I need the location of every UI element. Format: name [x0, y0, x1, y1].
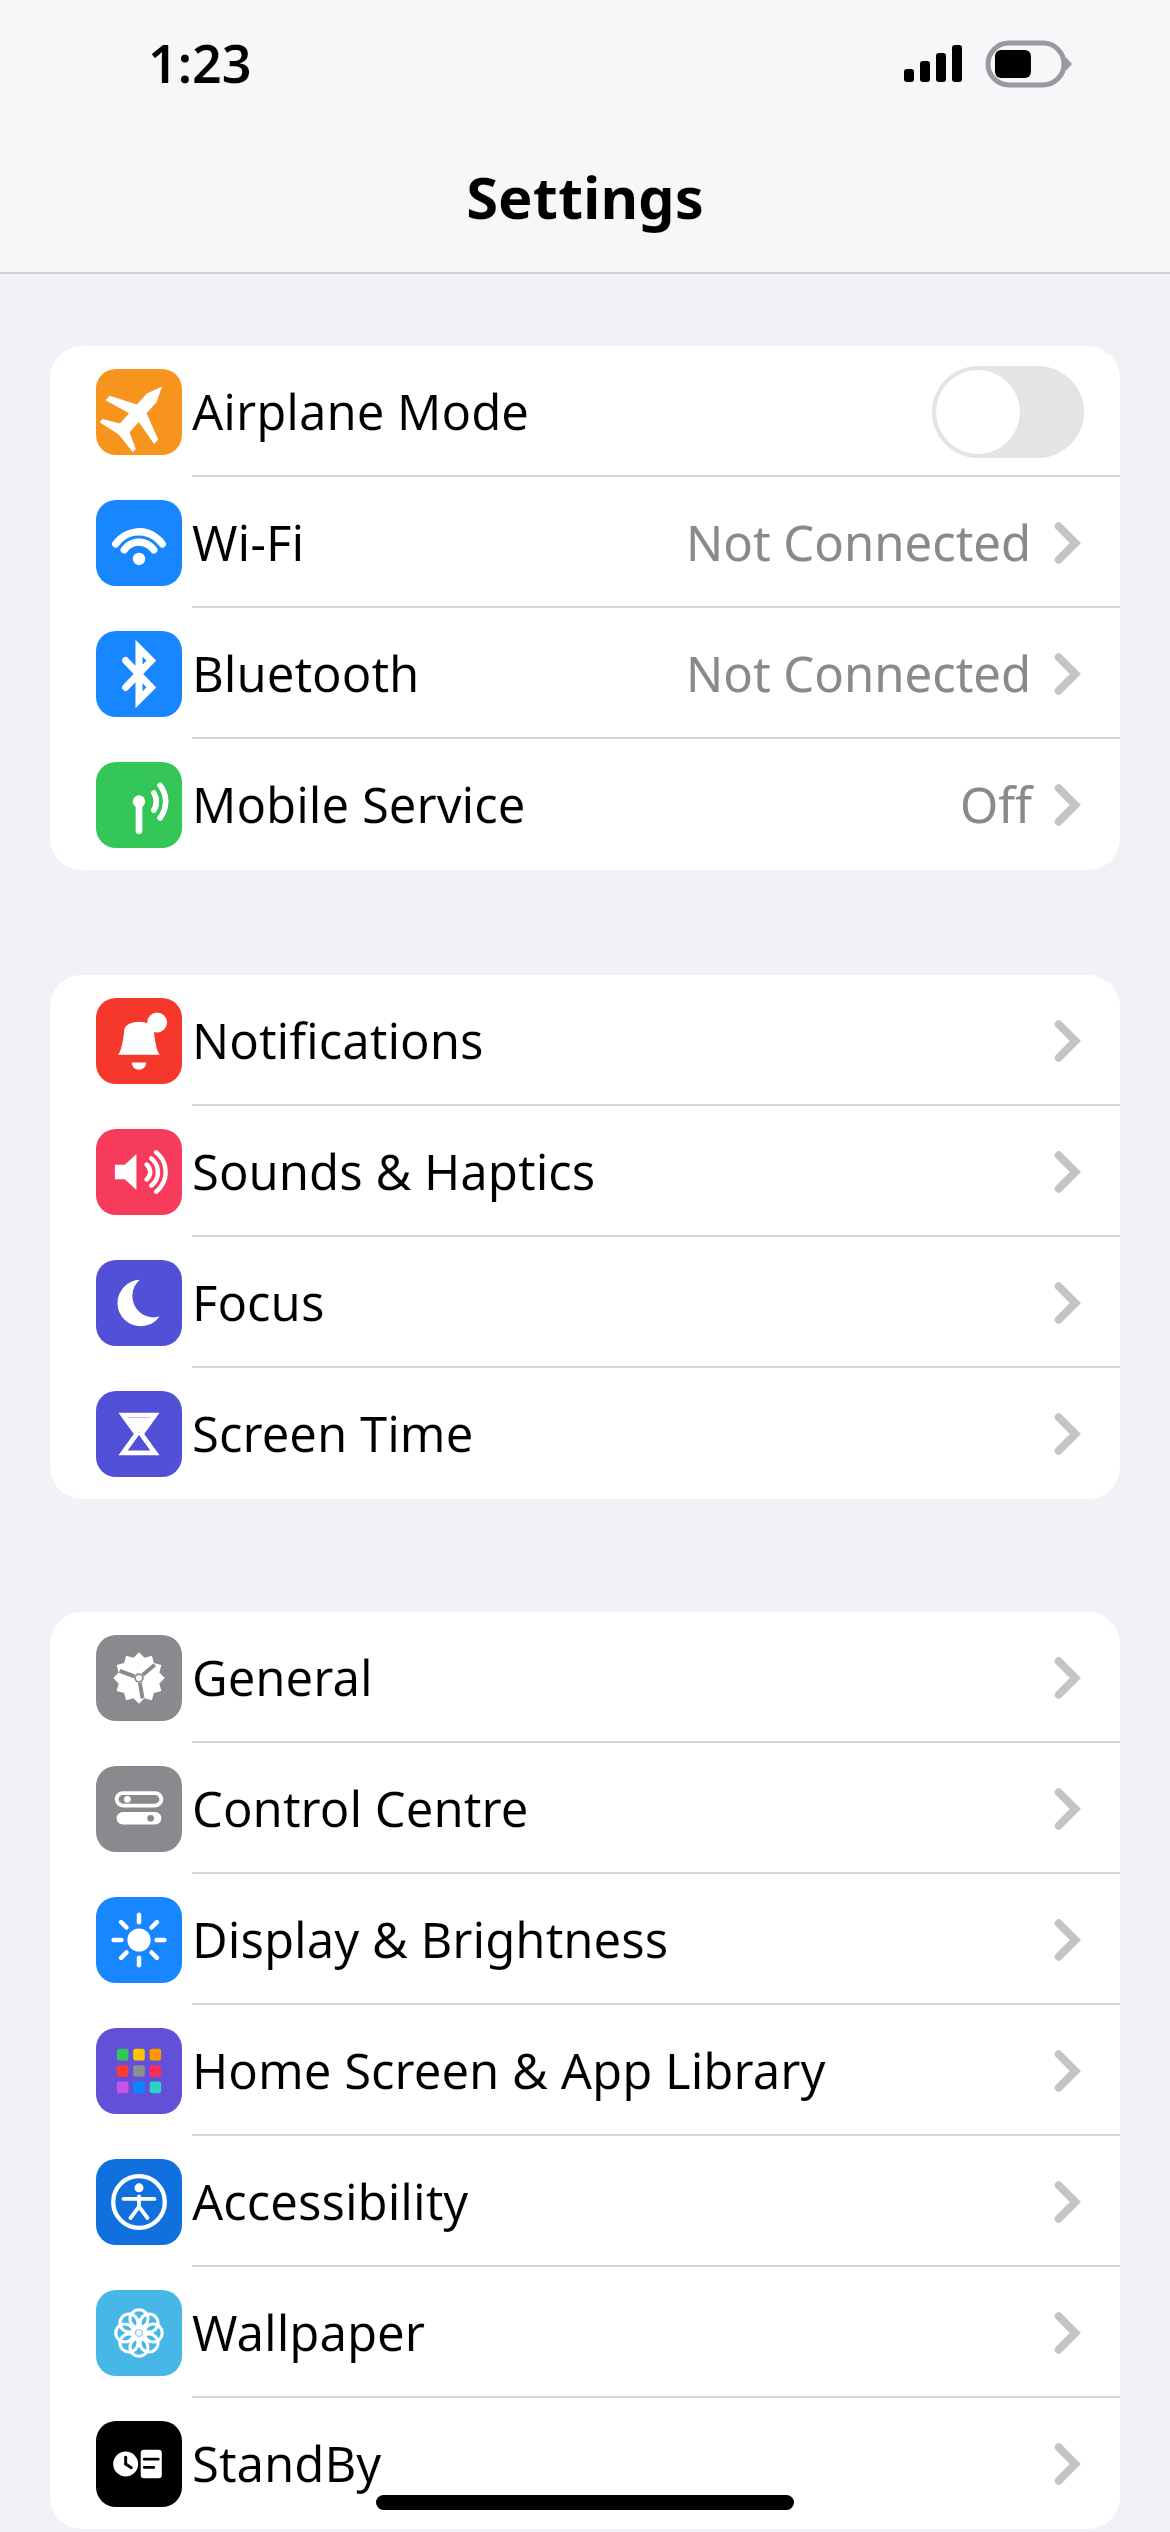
staticText: Focus — [192, 1269, 325, 1336]
button[interactable]: Bluetooth — [50, 608, 1120, 739]
staticText: Wallpaper — [192, 2299, 425, 2366]
button[interactable]: Airplane Mode — [50, 346, 1120, 477]
staticText: Wi-Fi — [192, 509, 305, 576]
button[interactable]: Mobile Service — [50, 739, 1120, 870]
button[interactable]: Display & Brightness — [50, 1874, 1120, 2005]
staticText: Not Connected — [686, 509, 1032, 576]
button[interactable]: Accessibility — [50, 2136, 1120, 2267]
staticText: Accessibility — [192, 2168, 469, 2235]
staticText: Not Connected — [686, 640, 1032, 707]
staticText: Bluetooth — [192, 640, 420, 707]
button[interactable]: Focus — [50, 1237, 1120, 1368]
button[interactable]: General — [50, 1612, 1120, 1743]
staticText: Control Centre — [192, 1775, 529, 1842]
button[interactable]: Wallpaper — [50, 2267, 1120, 2398]
staticText: Home Screen & App Library — [192, 2037, 826, 2104]
button[interactable]: Screen Time — [50, 1368, 1120, 1499]
staticText: Off — [960, 771, 1032, 838]
staticText: Airplane Mode — [192, 378, 529, 445]
button[interactable]: Home Screen & App Library — [50, 2005, 1120, 2136]
staticText: 1:23 — [148, 27, 252, 98]
button[interactable]: StandBy — [50, 2398, 1120, 2529]
button[interactable]: Wi-Fi — [50, 477, 1120, 608]
staticText: Sounds & Haptics — [192, 1138, 596, 1205]
button[interactable]: Sounds & Haptics — [50, 1106, 1120, 1237]
button[interactable]: Notifications — [50, 975, 1120, 1106]
staticText: Notifications — [192, 1007, 484, 1074]
staticText: Display & Brightness — [192, 1906, 669, 1973]
staticText: Settings — [466, 157, 704, 236]
staticText: General — [192, 1644, 373, 1711]
staticText: Screen Time — [192, 1400, 474, 1467]
staticText: StandBy — [192, 2430, 382, 2497]
button[interactable]: Airplane Mode toggle — [932, 366, 1084, 458]
staticText: Mobile Service — [192, 771, 526, 838]
button[interactable]: Control Centre — [50, 1743, 1120, 1874]
